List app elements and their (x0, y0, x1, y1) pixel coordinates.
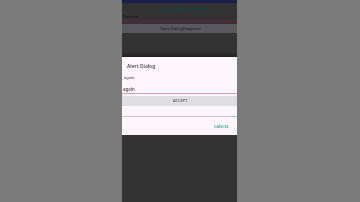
staticText: Namaste (123, 14, 140, 19)
staticText: Open DialogFragment (160, 26, 201, 31)
button[interactable]: ACCEPT (122, 96, 237, 106)
staticText: CANCEL (214, 124, 229, 129)
staticText: again (123, 86, 135, 92)
staticText: ACCEPT (173, 98, 188, 103)
staticText: again (124, 75, 135, 80)
button[interactable]: CANCEL (122, 119, 237, 133)
staticText: Dialog Fragment Example (159, 6, 208, 11)
staticText: Alert Dialog (127, 63, 156, 70)
button[interactable]: Open DialogFragment (122, 24, 237, 33)
